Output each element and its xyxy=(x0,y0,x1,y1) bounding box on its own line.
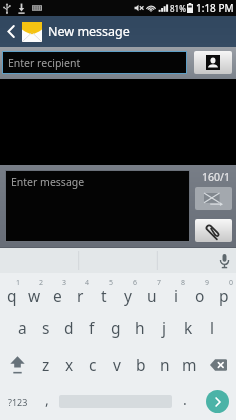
button[interactable]: g xyxy=(104,309,128,346)
button[interactable]: Send xyxy=(195,187,232,210)
button[interactable]: n xyxy=(153,346,177,383)
staticText: g xyxy=(111,317,121,338)
button[interactable]: 5 xyxy=(92,273,116,309)
button[interactable]: 9 xyxy=(188,273,212,309)
button[interactable]: m xyxy=(177,346,201,383)
button[interactable]: s xyxy=(34,309,57,346)
button[interactable]: Shift xyxy=(0,346,34,383)
staticText: 5 xyxy=(109,278,114,288)
button[interactable]: Backspace xyxy=(201,346,236,383)
button[interactable]: Enter recipient xyxy=(3,52,186,73)
staticText: Enter recipient xyxy=(8,56,81,70)
button[interactable]: Enter message xyxy=(6,171,189,241)
staticText: e xyxy=(53,285,62,306)
button[interactable]: Back xyxy=(0,16,22,47)
button[interactable]: 6 xyxy=(116,273,140,309)
button[interactable]: . xyxy=(172,383,198,420)
button[interactable]: Space xyxy=(59,383,172,420)
button[interactable]: 8 xyxy=(164,273,188,309)
button[interactable]: ?123 xyxy=(0,383,35,420)
staticText: k xyxy=(184,317,193,338)
staticText: , xyxy=(45,390,49,409)
staticText: 160/1 xyxy=(202,170,230,184)
staticText: s xyxy=(42,317,50,338)
button[interactable]: 3 xyxy=(46,273,69,309)
button[interactable]: h xyxy=(128,309,152,346)
button[interactable]: Voice input xyxy=(212,248,236,273)
staticText: i xyxy=(174,285,178,306)
button[interactable]: x xyxy=(57,346,81,383)
staticText: a xyxy=(18,317,27,338)
staticText: o xyxy=(195,285,205,306)
button[interactable]: 2 xyxy=(23,273,46,309)
staticText: p xyxy=(219,285,229,306)
button[interactable]: 0 xyxy=(212,273,236,309)
staticText: 7 xyxy=(157,278,162,288)
staticText: c xyxy=(89,354,97,375)
staticText: l xyxy=(210,317,214,338)
staticText: . xyxy=(183,390,187,409)
button[interactable]: Attach xyxy=(195,219,232,242)
button[interactable]: Contacts xyxy=(194,51,232,74)
staticText: 1 xyxy=(16,278,21,288)
staticText: h xyxy=(135,317,145,338)
button[interactable]: Enter xyxy=(206,390,229,413)
staticText: Enter message xyxy=(11,175,85,189)
staticText: y xyxy=(124,285,132,306)
staticText: n xyxy=(160,354,170,375)
staticText: 4 xyxy=(85,278,90,288)
button[interactable]: 4 xyxy=(69,273,92,309)
staticText: v xyxy=(113,354,121,375)
staticText: 1:18 PM xyxy=(196,1,234,15)
staticText: 81% xyxy=(170,3,186,14)
button[interactable]: j xyxy=(152,309,176,346)
button[interactable]: c xyxy=(81,346,105,383)
button[interactable]: a xyxy=(11,309,34,346)
button[interactable]: l xyxy=(200,309,224,346)
button[interactable]: 7 xyxy=(140,273,164,309)
staticText: z xyxy=(42,354,50,375)
button[interactable]: v xyxy=(105,346,129,383)
button[interactable]: , xyxy=(35,383,59,420)
staticText: 8 xyxy=(181,278,186,288)
staticText: j xyxy=(162,317,166,338)
staticText: ?123 xyxy=(8,396,28,408)
button[interactable]: f xyxy=(80,309,104,346)
button[interactable]: 1 xyxy=(0,273,23,309)
staticText: x xyxy=(65,354,74,375)
staticText: w xyxy=(28,285,41,306)
staticText: u xyxy=(147,285,157,306)
button[interactable]: z xyxy=(34,346,57,383)
staticText: 6 xyxy=(133,278,138,288)
staticText: 9 xyxy=(205,278,210,288)
staticText: 0 xyxy=(229,278,234,288)
staticText: d xyxy=(64,317,74,338)
button[interactable]: b xyxy=(129,346,153,383)
button[interactable]: k xyxy=(176,309,200,346)
staticText: b xyxy=(136,354,146,375)
staticText: f xyxy=(89,317,95,338)
staticText: q xyxy=(7,285,17,306)
staticText: 2 xyxy=(39,278,44,288)
staticText: 3 xyxy=(62,278,67,288)
staticText: m xyxy=(182,354,197,375)
staticText: t xyxy=(101,285,107,306)
staticText: r xyxy=(77,285,84,306)
staticText: New message xyxy=(48,23,130,40)
button[interactable]: d xyxy=(57,309,80,346)
